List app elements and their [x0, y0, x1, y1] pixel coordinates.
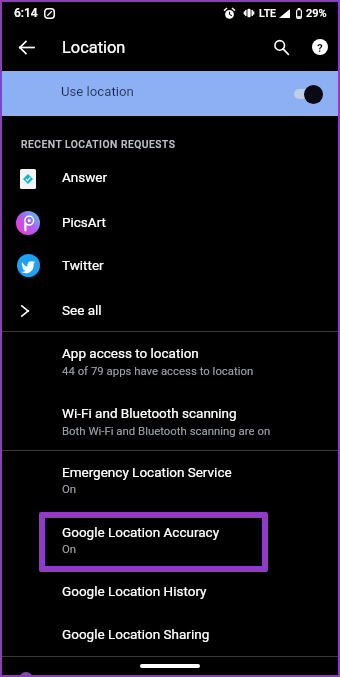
button[interactable] [0, 289, 340, 332]
button[interactable] [0, 570, 340, 613]
staticText: PicsArt [62, 214, 106, 230]
button[interactable]: Back [4, 26, 48, 68]
staticText: On [62, 482, 77, 495]
staticText: See all [62, 302, 102, 318]
staticText: ? [317, 41, 323, 54]
staticText: Location is on [60, 672, 145, 677]
staticText: RECENT LOCATION REQUESTS [21, 138, 176, 150]
staticText: LTE [259, 7, 276, 19]
button[interactable] [0, 613, 340, 656]
staticText: Answer [62, 169, 108, 185]
staticText: Wi-Fi and Bluetooth scanning [62, 405, 237, 421]
staticText: Emergency Location Service [62, 464, 232, 480]
staticText: On [62, 542, 77, 555]
staticText: 29% [306, 7, 327, 20]
staticText: Google Location Accuracy [62, 524, 220, 540]
staticText: Use location [61, 84, 134, 99]
staticText: Location [62, 38, 126, 57]
button[interactable]: Use location [0, 71, 340, 116]
button[interactable] [0, 201, 340, 244]
staticText: Twitter [62, 257, 104, 273]
button[interactable] [0, 520, 340, 566]
staticText: 6:14 [14, 6, 38, 20]
staticText: App access to location [62, 345, 199, 361]
staticText: 44 of 79 apps have access to location [62, 364, 254, 377]
button[interactable] [0, 157, 340, 200]
staticText: lly, GPS, Wi-Fi, mobile [200, 672, 307, 677]
button[interactable] [0, 244, 340, 287]
button[interactable] [0, 460, 340, 506]
button[interactable]: Search [260, 26, 301, 68]
button[interactable] [0, 341, 340, 387]
button[interactable]: Help [301, 26, 338, 68]
staticText: Both Wi-Fi and Bluetooth scanning are on [62, 424, 271, 437]
staticText: Google Location Sharing [62, 626, 210, 642]
button[interactable] [0, 401, 340, 447]
staticText: Google Location History [62, 583, 207, 599]
